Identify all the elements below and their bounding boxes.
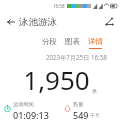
staticText: 图表	[65, 37, 80, 46]
button[interactable]: Share	[102, 14, 117, 29]
staticText: 运动时间	[13, 101, 34, 108]
staticText: 549	[73, 109, 89, 119]
button[interactable]: 分段	[41, 37, 58, 49]
staticText: 详情	[88, 37, 103, 46]
staticText: 热量	[73, 101, 84, 108]
staticText: 01:09:13	[13, 109, 49, 119]
button[interactable]: 热量	[60, 99, 120, 119]
staticText: 分段	[42, 37, 57, 46]
staticText: 千卡	[90, 112, 100, 118]
button[interactable]: Back	[3, 14, 18, 29]
staticText: 1,950	[23, 62, 90, 97]
staticText: 16:58	[53, 3, 65, 9]
button[interactable]: 图表	[64, 37, 81, 49]
staticText: 2023年7月25日 16:58	[46, 53, 107, 61]
button[interactable]: 详情	[87, 37, 104, 49]
button[interactable]: 运动时间	[0, 99, 60, 119]
staticText: 米	[92, 88, 97, 94]
staticText: 泳池游泳	[19, 16, 57, 28]
